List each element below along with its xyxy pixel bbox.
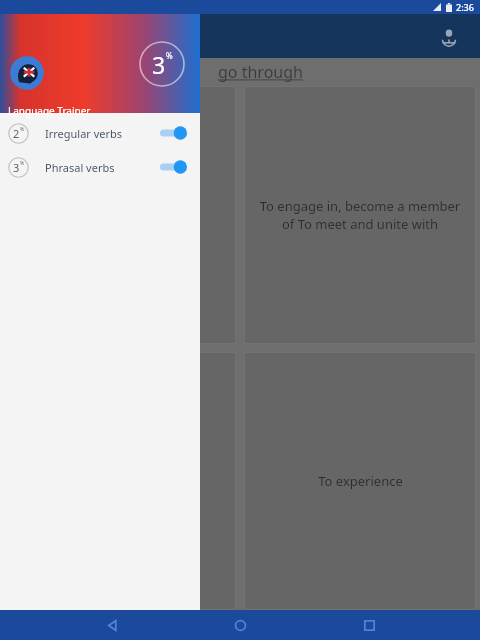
staticText: Irregular verbs: [45, 126, 123, 141]
staticText: 3: [13, 160, 20, 175]
button[interactable]: Back: [95, 610, 129, 640]
staticText: 2: [13, 126, 20, 141]
staticText: To join, to take part in (a movement): [16, 463, 224, 499]
button[interactable]: To join, to take part in (a movement): [4, 86, 236, 344]
staticText: %: [20, 160, 25, 167]
staticText: %: [166, 50, 173, 61]
staticText: To experience: [318, 472, 403, 490]
button[interactable]: To experience: [244, 352, 476, 610]
staticText: 2:36: [456, 1, 474, 13]
staticText: go through: [218, 61, 303, 83]
staticText: To join, to take part in (a movement): [16, 197, 224, 233]
staticText: 3: [152, 49, 166, 80]
button[interactable]: To engage in, become a member of To meet…: [244, 86, 476, 344]
button[interactable]: 2: [0, 116, 200, 150]
button[interactable]: App icon: [10, 56, 44, 90]
staticText: To engage in, become a member of To meet…: [256, 197, 464, 233]
staticText: %: [20, 126, 25, 133]
staticText: Phrasal verbs: [45, 160, 115, 175]
button[interactable]: Recents: [352, 610, 386, 640]
button[interactable]: Voice search: [432, 19, 466, 53]
button[interactable]: 3: [0, 150, 200, 184]
button[interactable]: Home: [223, 610, 257, 640]
button[interactable]: To join, to take part in (a movement): [4, 352, 236, 610]
staticText: Language Trainer: [8, 104, 91, 118]
